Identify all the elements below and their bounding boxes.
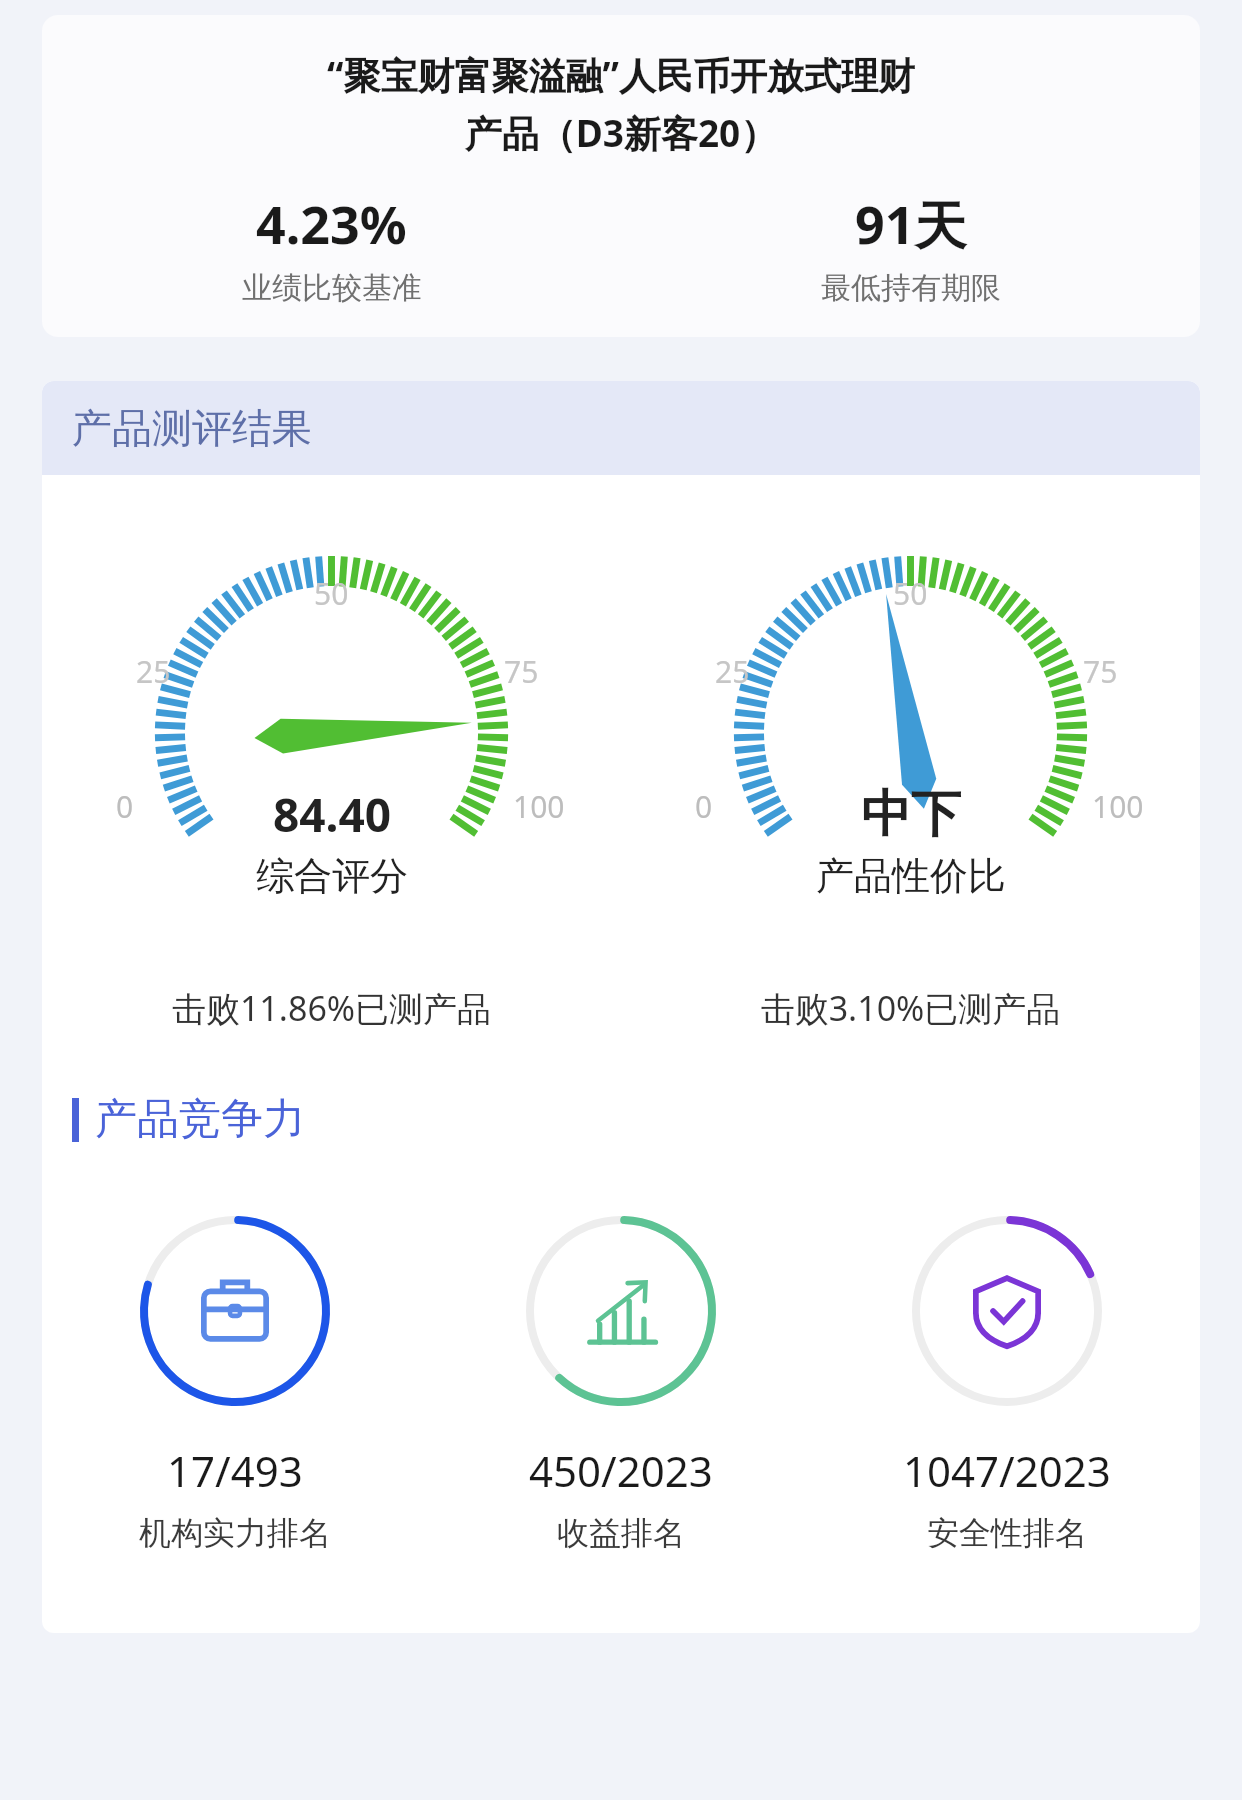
staticText: 中下: [861, 783, 961, 846]
staticText: 25: [136, 651, 171, 692]
staticText: 1047/2023: [903, 1442, 1111, 1499]
button[interactable]: 安全性排名: [814, 1216, 1200, 1553]
staticText: 75: [1083, 651, 1118, 692]
staticText: 业绩比较基准: [242, 269, 422, 307]
staticText: 机构实力排名: [139, 1513, 331, 1553]
staticText: 击败3.10%已测产品: [621, 985, 1200, 1031]
staticText: 综合评分: [256, 852, 408, 900]
button[interactable]: “聚宝财富聚溢融”人民币开放式理财 产品（D3新客20）: [42, 15, 1200, 337]
staticText: 安全性排名: [927, 1513, 1087, 1553]
staticText: “聚宝财富聚溢融”人民币开放式理财 产品（D3新客20）: [66, 49, 1176, 158]
staticText: 100: [1092, 786, 1144, 827]
staticText: 450/2023: [529, 1442, 713, 1499]
button[interactable]: 机构实力排名: [42, 1216, 428, 1553]
staticText: 击败11.86%已测产品: [42, 985, 621, 1031]
button[interactable]: 收益排名: [428, 1216, 814, 1553]
button[interactable]: 84.40: [42, 531, 621, 951]
staticText: 84.40: [273, 783, 392, 846]
staticText: 0: [695, 786, 713, 827]
staticText: 0: [116, 786, 134, 827]
staticText: 25: [715, 651, 750, 692]
staticText: 产品测评结果: [72, 403, 312, 453]
button[interactable]: 中下: [621, 531, 1200, 951]
staticText: 91天: [855, 188, 967, 259]
staticText: 17/493: [167, 1442, 303, 1499]
button[interactable]: 产品竞争力: [72, 1093, 305, 1146]
staticText: 75: [504, 651, 539, 692]
button[interactable]: 91天: [621, 188, 1200, 307]
staticText: 50: [893, 573, 928, 614]
button[interactable]: 产品测评结果: [42, 381, 1200, 475]
staticText: 100: [513, 786, 565, 827]
staticText: 50: [314, 573, 349, 614]
staticText: 4.23%: [256, 188, 407, 259]
staticText: 产品竞争力: [95, 1093, 305, 1146]
staticText: 最低持有期限: [821, 269, 1001, 307]
staticText: 产品性价比: [816, 852, 1006, 900]
staticText: 收益排名: [557, 1513, 685, 1553]
button[interactable]: 4.23%: [42, 188, 621, 307]
